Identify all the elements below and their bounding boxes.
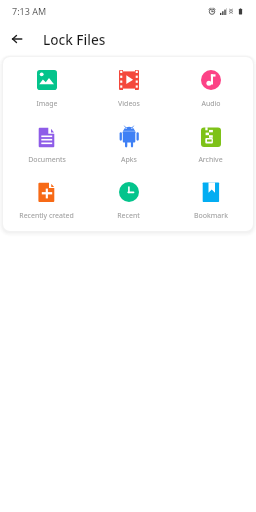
staticText: Videos <box>118 99 140 109</box>
button[interactable]: Archive <box>171 120 250 165</box>
staticText: Audio <box>201 99 221 109</box>
staticText: Archive <box>198 155 223 165</box>
button[interactable]: Documents <box>7 120 86 165</box>
button[interactable]: Back <box>6 28 28 50</box>
staticText: Recent <box>117 211 140 221</box>
staticText: Recently created <box>19 211 74 221</box>
staticText: Apks <box>121 155 137 165</box>
staticText: Documents <box>28 155 66 165</box>
button[interactable]: Image <box>7 64 86 109</box>
button[interactable]: Apks <box>89 120 168 165</box>
button[interactable]: Videos <box>89 64 168 109</box>
staticText: Image <box>36 99 58 109</box>
staticText: Lock Files <box>43 30 106 49</box>
button[interactable]: Audio <box>171 64 250 109</box>
button[interactable]: Recently created <box>7 176 86 221</box>
button[interactable]: Bookmark <box>171 176 250 221</box>
staticText: Bookmark <box>194 211 228 221</box>
button[interactable]: Recent <box>89 176 168 221</box>
staticText: 7:13 AM <box>12 5 47 17</box>
